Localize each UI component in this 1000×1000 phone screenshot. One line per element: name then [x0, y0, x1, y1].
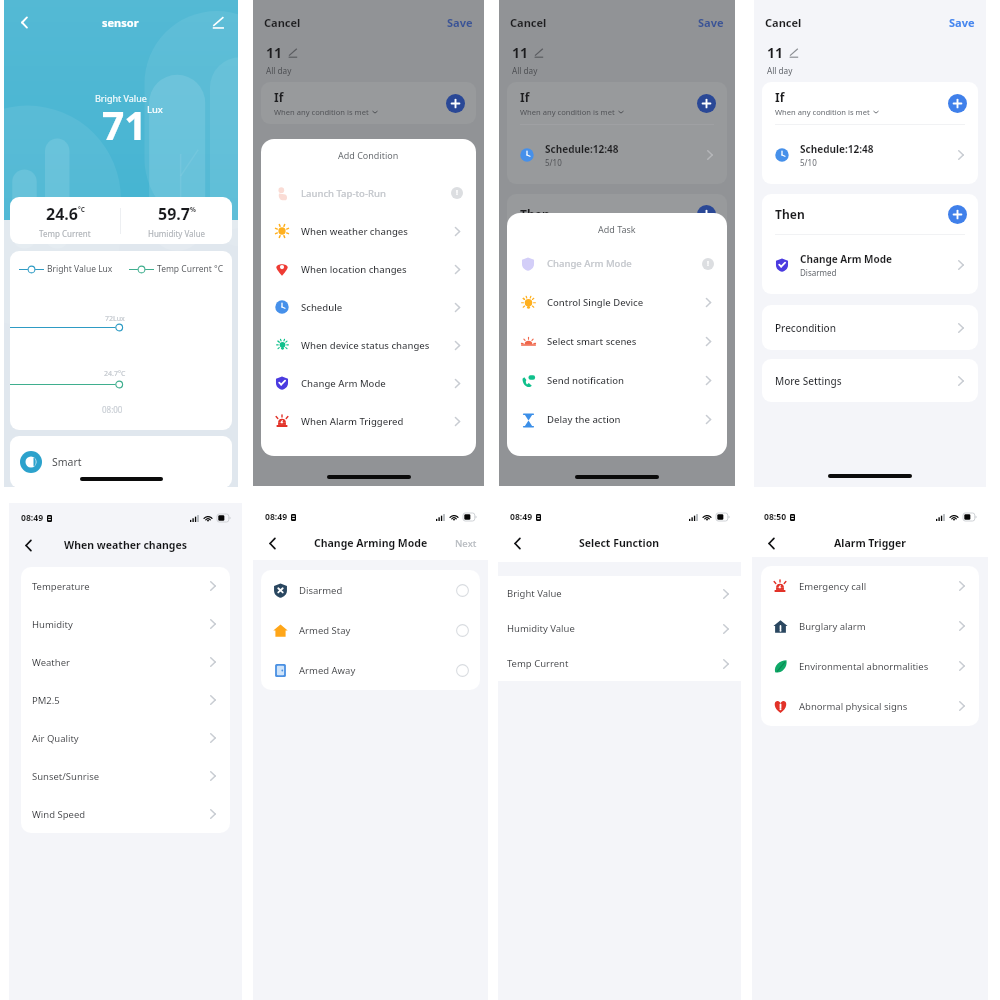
button[interactable]: Delay the action [507, 400, 727, 439]
button[interactable]: Weather [21, 643, 230, 681]
button[interactable]: Control Single Device [507, 283, 727, 322]
staticText: Change Arm Mode [800, 252, 893, 266]
button[interactable]: When weather changes [261, 212, 476, 250]
staticText: ! [707, 259, 709, 269]
button[interactable]: Emergency call [761, 566, 979, 606]
staticText: Emergency call [799, 580, 867, 593]
button[interactable]: Next [455, 537, 477, 550]
staticText: % [190, 205, 196, 214]
staticText: Lux [147, 103, 163, 116]
staticText: Humidity [32, 618, 73, 631]
staticText: Environmental abnormalities [799, 660, 929, 673]
staticText: 08:00 [102, 404, 123, 415]
button[interactable]: PM2.5 [21, 681, 230, 719]
staticText: Burglary alarm [799, 620, 866, 633]
button[interactable]: Humidity [21, 605, 230, 643]
button[interactable]: Schedule:12:48 [762, 125, 978, 184]
button[interactable]: Armed Stay [261, 610, 480, 650]
button[interactable]: Wind Speed [21, 795, 230, 833]
button[interactable]: Save [698, 15, 724, 30]
button[interactable]: Back [508, 534, 526, 552]
staticText: 08:50 [764, 511, 787, 523]
button[interactable]: Add condition [446, 94, 465, 113]
button[interactable]: Armed Away [261, 650, 480, 690]
staticText: Alarm Trigger [834, 536, 906, 550]
staticText: Select Function [579, 536, 660, 550]
button[interactable]: Temperature [21, 567, 230, 605]
button[interactable]: Schedule [261, 288, 476, 326]
staticText: PM2.5 [32, 694, 60, 707]
staticText: If [274, 89, 284, 105]
staticText: Launch Tap-to-Run [301, 187, 386, 200]
staticText: Bright Value [507, 587, 562, 600]
staticText: Wind Speed [32, 808, 86, 821]
staticText: 08:49 [510, 511, 533, 523]
staticText: Humidity Value [507, 622, 575, 635]
button[interactable]: Launch Tap-to-Run [261, 174, 476, 212]
button[interactable]: Environmental abnormalities [761, 646, 979, 686]
button[interactable]: Burglary alarm [761, 606, 979, 646]
button[interactable]: Precondition [762, 305, 978, 350]
button[interactable]: Send notification [507, 361, 727, 400]
staticText: Weather [32, 656, 70, 669]
button[interactable]: When Alarm Triggered [261, 402, 476, 440]
button[interactable]: Smart [10, 436, 232, 488]
staticText: When any condition is met [520, 107, 615, 117]
button[interactable]: Temp Current [498, 646, 741, 681]
staticText: 59.7 [158, 203, 190, 225]
staticText: Smart [52, 455, 82, 469]
staticText: Temp Current °C [157, 263, 224, 275]
button[interactable]: Cancel [510, 15, 547, 30]
button[interactable]: Change Arm Mode [507, 244, 727, 283]
staticText: When weather changes [64, 538, 187, 552]
staticText: If [520, 89, 530, 105]
staticText: ! [456, 188, 458, 198]
staticText: 11 [266, 43, 283, 62]
staticText: Bright Value [95, 92, 147, 104]
button[interactable]: Disarmed [261, 570, 480, 610]
button[interactable]: Edit [207, 11, 229, 33]
button[interactable]: Bright Value [498, 576, 741, 611]
button[interactable]: Add task [697, 205, 716, 224]
button[interactable]: Back [762, 534, 780, 552]
staticText: Then [520, 206, 550, 222]
staticText: When any condition is met [274, 107, 369, 117]
staticText: Then [775, 206, 805, 222]
staticText: Select smart scenes [547, 335, 637, 348]
staticText: When device status changes [301, 339, 430, 352]
staticText: Abnormal physical signs [799, 700, 908, 713]
button[interactable]: Abnormal physical signs [761, 686, 979, 726]
button[interactable]: Select smart scenes [507, 322, 727, 361]
button[interactable]: Back [19, 536, 37, 554]
staticText: Armed Away [299, 664, 356, 677]
button[interactable]: Cancel [765, 15, 802, 30]
staticText: Temperature [32, 580, 90, 593]
staticText: 5/10 [545, 157, 562, 168]
button[interactable]: More Settings [762, 359, 978, 402]
button[interactable]: When device status changes [261, 326, 476, 364]
button[interactable]: Air Quality [21, 719, 230, 757]
staticText: 08:49 [21, 512, 44, 524]
button[interactable]: Back [263, 534, 281, 552]
staticText: Change Arm Mode [547, 257, 632, 270]
staticText: When any condition is met [775, 107, 870, 117]
button[interactable]: Change Arm Mode [261, 364, 476, 402]
button[interactable]: Cancel [264, 15, 301, 30]
button[interactable]: Schedule:12:48 [507, 125, 727, 184]
button[interactable]: Sunset/Sunrise [21, 757, 230, 795]
button[interactable]: When location changes [261, 250, 476, 288]
button[interactable]: Humidity Value [498, 611, 741, 646]
staticText: 08:49 [265, 511, 288, 523]
staticText: Disarmed [299, 584, 343, 597]
staticText: Humidity Value [148, 228, 206, 239]
button[interactable]: Add condition [697, 94, 716, 113]
button[interactable]: Change Arm Mode [762, 235, 978, 294]
staticText: When Alarm Triggered [301, 415, 404, 428]
staticText: Disarmed [800, 267, 837, 278]
button[interactable]: Add task [948, 205, 967, 224]
staticText: More Settings [775, 374, 842, 388]
button[interactable]: Save [447, 15, 473, 30]
button[interactable]: Back [13, 11, 35, 33]
button[interactable]: Save [949, 15, 975, 30]
button[interactable]: Add condition [948, 94, 967, 113]
